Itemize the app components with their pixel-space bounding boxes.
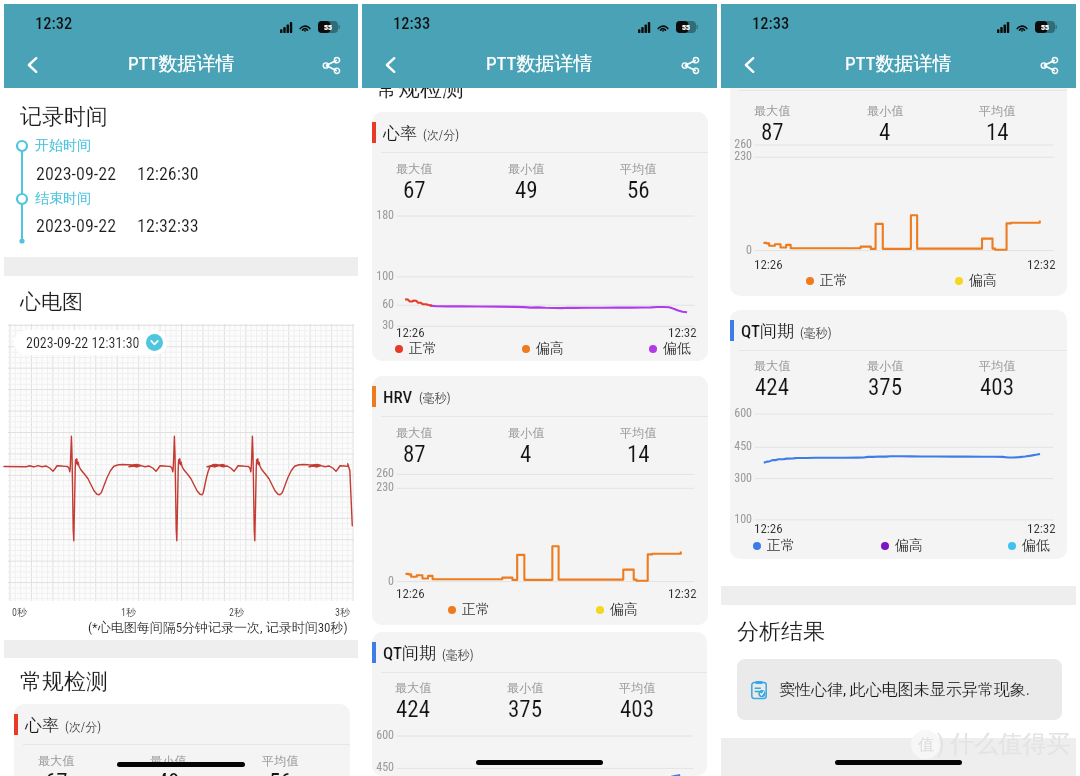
staticText: 12:26:30: [137, 163, 199, 184]
staticText: 最大值: [38, 753, 75, 768]
staticText: 分析结果: [737, 618, 825, 646]
staticText: 正常: [767, 537, 795, 555]
staticText: 开始时间: [35, 137, 91, 155]
staticText: 12:32: [668, 325, 697, 340]
staticText: 230: [372, 480, 394, 494]
staticText: 最小值: [150, 753, 187, 768]
button[interactable]: 2023-09-22 12:31:30: [26, 334, 163, 351]
staticText: 14: [986, 119, 1009, 146]
staticText: 2023-09-22: [36, 215, 117, 236]
staticText: 180: [372, 208, 394, 222]
staticText: 12:33: [393, 14, 431, 33]
staticText: 300: [730, 471, 752, 485]
staticText: 450: [372, 760, 394, 774]
staticText: 4: [520, 441, 532, 468]
staticText: 正常: [820, 272, 848, 290]
staticText: 1秒: [121, 606, 136, 619]
staticText: (次/分): [65, 719, 102, 734]
staticText: 2023-09-22: [36, 163, 117, 184]
staticText: 55: [682, 23, 691, 32]
staticText: 56: [269, 769, 292, 776]
staticText: HRV: [383, 387, 413, 407]
button[interactable]: 窦性心律, 此心电图未显示异常现象.: [737, 659, 1062, 720]
staticText: 450: [730, 439, 752, 453]
staticText: 55: [324, 23, 333, 32]
button[interactable]: Back: [369, 43, 413, 87]
staticText: 12:26: [396, 325, 425, 340]
staticText: 最大值: [395, 680, 432, 695]
staticText: 最小值: [508, 425, 545, 440]
staticText: 0秒: [12, 606, 27, 619]
button[interactable]: Share: [1028, 44, 1070, 86]
staticText: 30: [372, 318, 394, 332]
staticText: 平均值: [620, 161, 657, 176]
staticText: 375: [508, 696, 543, 723]
staticText: 平均值: [979, 358, 1016, 373]
staticText: (毫秒): [419, 390, 451, 405]
staticText: 260: [372, 466, 394, 480]
staticText: 最大值: [396, 161, 433, 176]
staticText: 2秒: [229, 606, 244, 619]
staticText: 403: [620, 696, 655, 723]
staticText: 14: [627, 441, 650, 468]
staticText: 12:32: [1027, 521, 1056, 536]
staticText: 56: [627, 177, 650, 204]
staticText: 375: [868, 374, 903, 401]
staticText: 49: [515, 177, 538, 204]
staticText: 偏低: [1022, 537, 1050, 555]
staticText: 87: [761, 119, 784, 146]
staticText: PTT数据详情: [845, 52, 952, 76]
staticText: 0: [372, 574, 394, 588]
staticText: QT间期: [741, 321, 794, 342]
staticText: 正常: [409, 340, 437, 358]
staticText: 600: [372, 728, 394, 742]
staticText: 偏高: [536, 340, 564, 358]
staticText: 偏高: [895, 537, 923, 555]
staticText: 平均值: [619, 680, 656, 695]
staticText: 12:32: [668, 586, 697, 601]
staticText: 最大值: [754, 103, 791, 118]
staticText: 12:32: [1027, 257, 1056, 272]
staticText: ) 什么值得买: [937, 729, 1071, 759]
staticText: 正常: [462, 601, 490, 619]
staticText: 最大值: [396, 425, 433, 440]
staticText: 最小值: [508, 161, 545, 176]
staticText: (次/分): [423, 127, 460, 142]
button[interactable]: Back: [11, 43, 55, 87]
staticText: 0: [730, 243, 752, 257]
staticText: 偏低: [663, 340, 691, 358]
button[interactable]: Share: [310, 44, 352, 86]
staticText: 心率: [25, 715, 59, 736]
staticText: (*心电图每间隔5分钟记录一次, 记录时间30秒): [88, 619, 348, 635]
staticText: 424: [755, 374, 790, 401]
staticText: 600: [730, 406, 752, 420]
staticText: PTT数据详情: [128, 52, 235, 76]
staticText: 230: [730, 149, 752, 163]
staticText: 最小值: [867, 103, 904, 118]
staticText: 67: [45, 769, 68, 776]
staticText: QT间期: [383, 643, 436, 664]
staticText: 最大值: [754, 358, 791, 373]
staticText: 结束时间: [35, 190, 91, 208]
staticText: 最小值: [507, 680, 544, 695]
staticText: 窦性心律, 此心电图未显示异常现象.: [779, 680, 1031, 700]
staticText: HRV: [741, 61, 771, 81]
staticText: 2023-09-22 12:31:30: [26, 335, 140, 351]
staticText: 12:26: [396, 586, 425, 601]
staticText: 55: [1041, 23, 1050, 32]
staticText: (毫秒): [800, 325, 832, 340]
staticText: 4: [879, 119, 891, 146]
staticText: 常规检测: [376, 75, 464, 103]
button[interactable]: Back: [728, 43, 772, 87]
staticText: 记录时间: [20, 103, 108, 131]
staticText: PTT数据详情: [486, 52, 593, 76]
staticText: 424: [396, 696, 431, 723]
staticText: 87: [403, 441, 426, 468]
staticText: 3秒: [335, 606, 350, 619]
staticText: 偏高: [969, 272, 997, 290]
staticText: 60: [372, 297, 394, 311]
button[interactable]: Share: [669, 44, 711, 86]
staticText: 12:32:33: [137, 215, 199, 236]
staticText: 平均值: [979, 103, 1016, 118]
staticText: 值: [918, 735, 934, 755]
